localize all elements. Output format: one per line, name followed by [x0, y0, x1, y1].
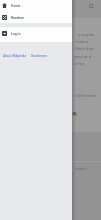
button[interactable]: Log in — [0, 28, 72, 39]
staticText: . Note that — [74, 46, 94, 51]
staticText: Random — [11, 16, 24, 20]
staticText: Home — [11, 4, 21, 8]
button[interactable]: Random — [0, 12, 72, 23]
staticText: eyed as if — [74, 54, 92, 59]
staticText: y may be — [78, 32, 95, 37]
button[interactable]: Search — [85, 1, 97, 13]
button[interactable]: Disclaimers — [31, 54, 48, 58]
staticText: Log in — [11, 32, 21, 36]
button[interactable]: About Wikipedia — [3, 54, 27, 58]
staticText: hout a — [76, 39, 88, 44]
staticText: ed by — [74, 61, 84, 66]
button[interactable]: Home — [0, 0, 72, 11]
staticText: unless — [75, 166, 87, 171]
staticText: e Wikimedia — [74, 93, 97, 98]
